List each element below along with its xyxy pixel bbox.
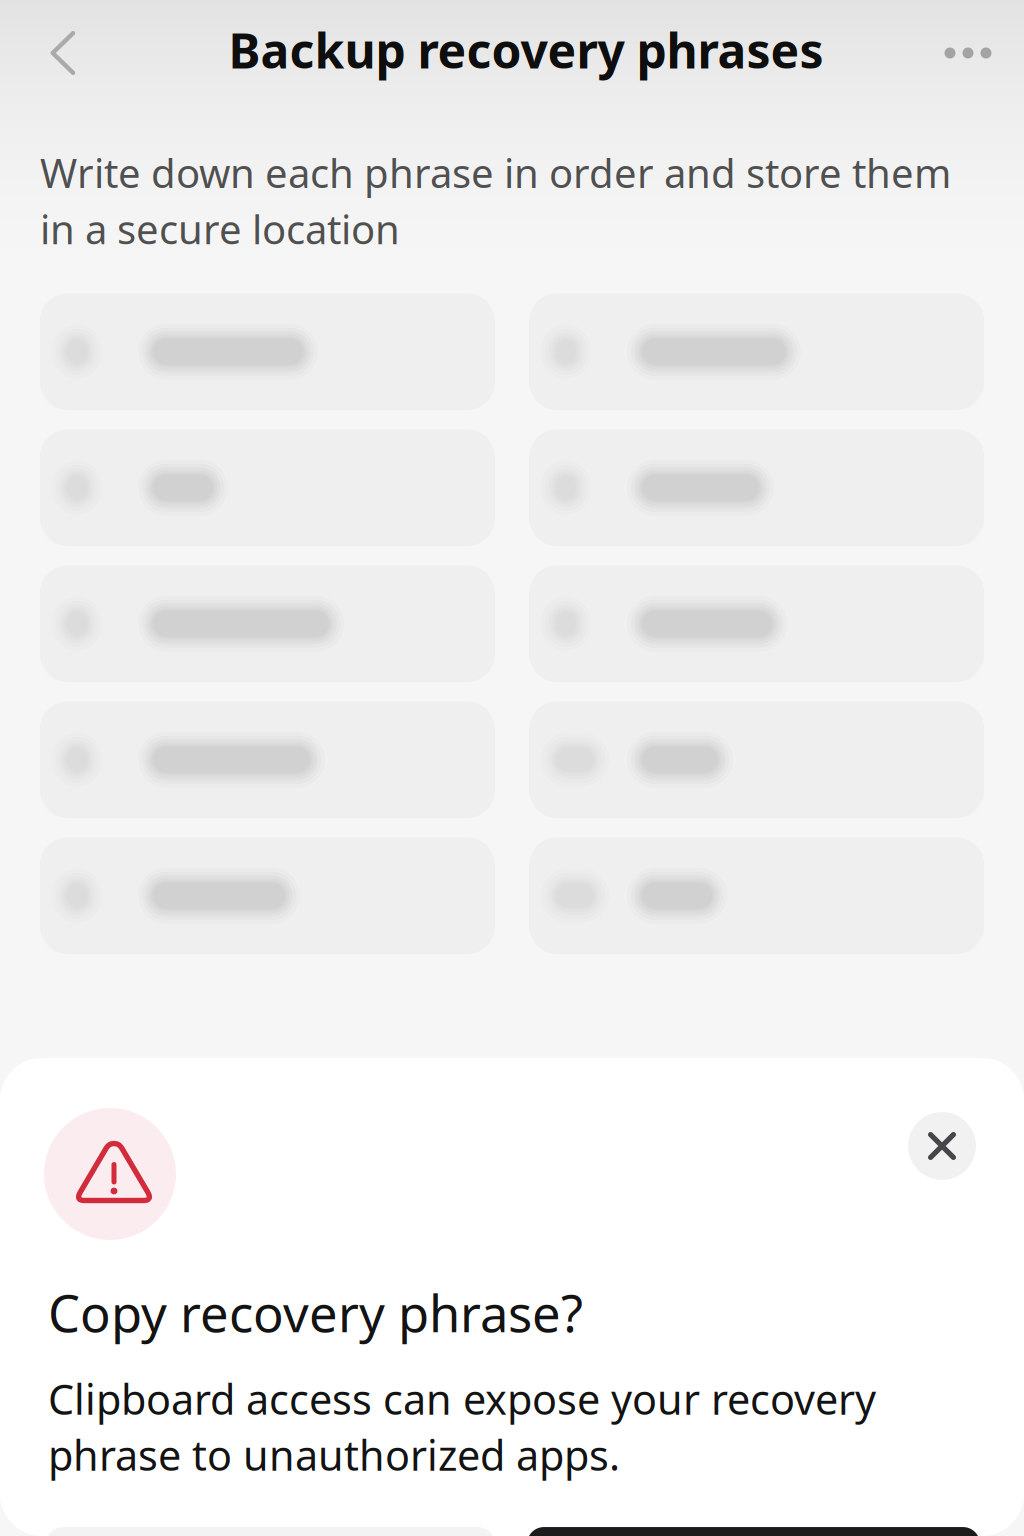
button[interactable]: More options: [916, 0, 1020, 104]
button[interactable]: [40, 837, 495, 954]
button[interactable]: Back: [0, 0, 104, 104]
staticText: Write down each phrase in order and stor…: [40, 146, 951, 255]
button[interactable]: [529, 429, 984, 546]
button[interactable]: [40, 565, 495, 682]
button[interactable]: [40, 701, 495, 818]
button[interactable]: Close: [908, 1112, 976, 1180]
button[interactable]: [529, 565, 984, 682]
button[interactable]: [40, 293, 495, 410]
staticText: Copy recovery phrase?: [48, 1279, 583, 1346]
staticText: Backup recovery phrases: [228, 18, 823, 82]
button[interactable]: [40, 429, 495, 546]
button[interactable]: [529, 837, 984, 954]
staticText: Clipboard access can expose your recover…: [48, 1371, 876, 1482]
button[interactable]: [529, 293, 984, 410]
button[interactable]: Copy: [527, 1527, 980, 1536]
button[interactable]: [529, 701, 984, 818]
